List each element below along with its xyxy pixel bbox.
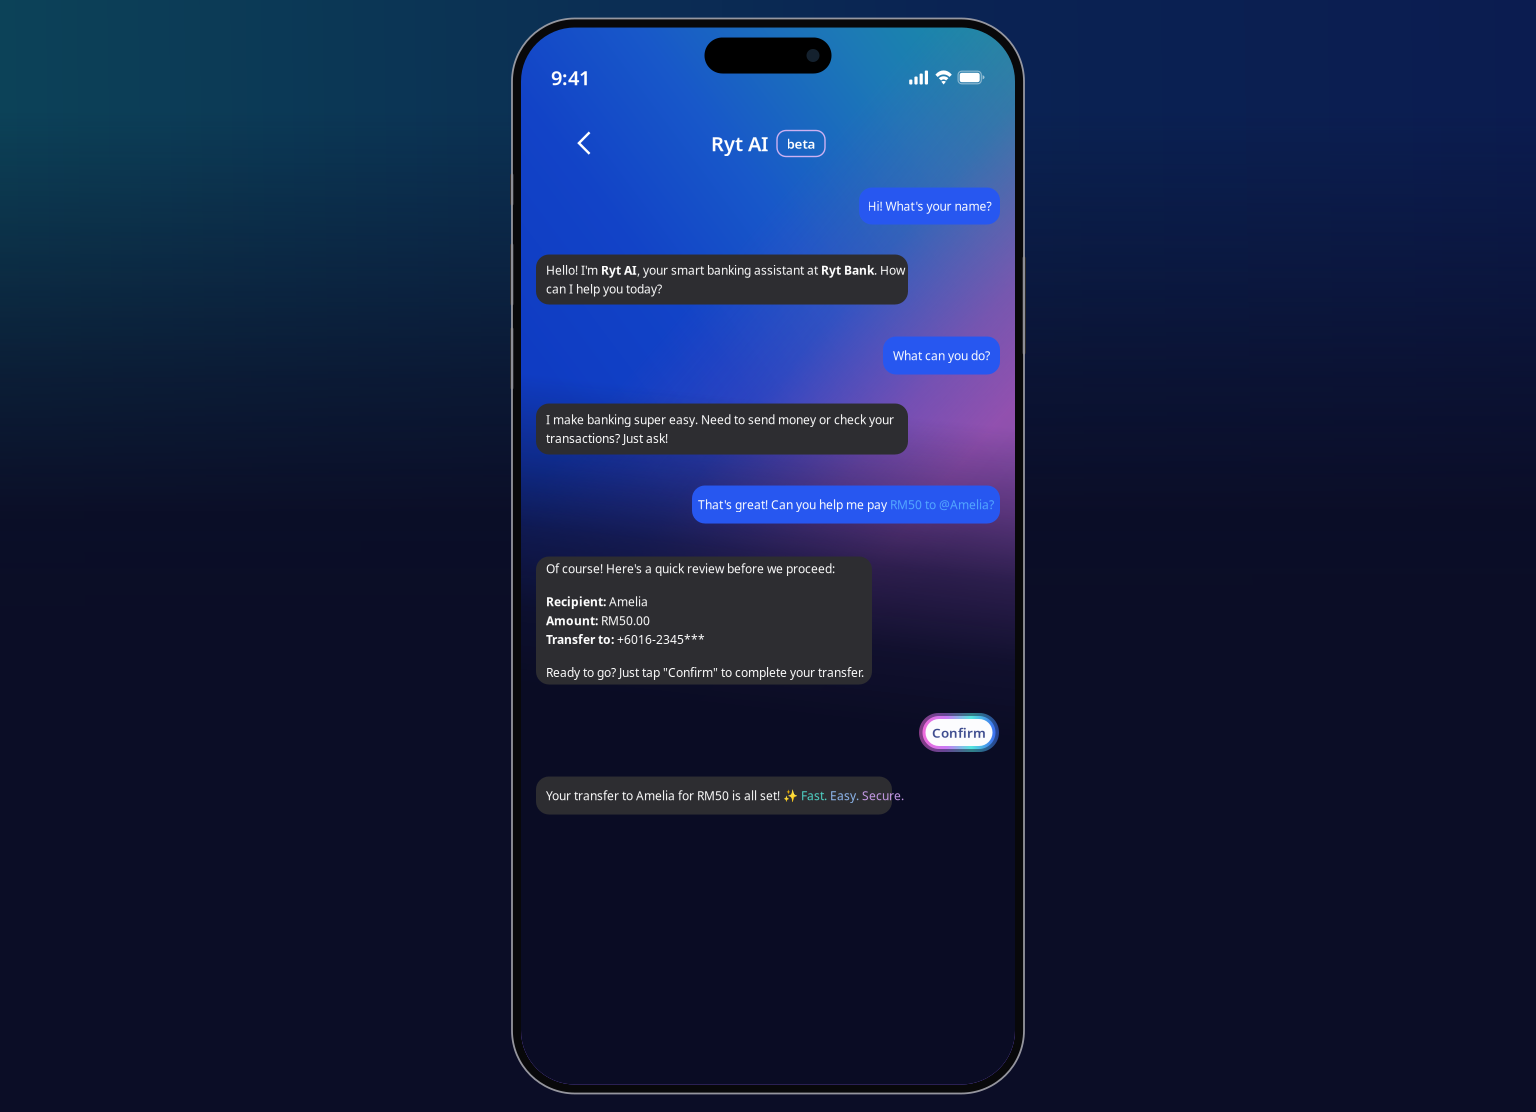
staticText: Of course! Here's a quick review before … bbox=[546, 561, 835, 577]
button[interactable]: Confirm bbox=[917, 712, 1001, 752]
staticText: , your smart banking assistant at bbox=[637, 262, 821, 278]
button[interactable]: beta bbox=[777, 130, 825, 156]
staticText: RM50 to @Amelia? bbox=[890, 496, 994, 512]
staticText: Hello! I'm bbox=[546, 262, 601, 278]
staticText: Ryt Bank bbox=[821, 262, 874, 278]
staticText: . How bbox=[874, 262, 905, 278]
staticText: Transfer to: bbox=[546, 631, 617, 647]
staticText: transactions? Just ask! bbox=[546, 430, 668, 446]
staticText: I make banking super easy. Need to send … bbox=[546, 412, 894, 427]
staticText: Easy. bbox=[830, 787, 862, 803]
staticText: Ryt AI bbox=[711, 130, 768, 157]
staticText: Secure. bbox=[862, 787, 904, 803]
staticText: Confirm bbox=[932, 724, 986, 741]
staticText: That's great! Can you help me pay bbox=[698, 496, 890, 512]
staticText: can I help you today? bbox=[546, 281, 662, 297]
staticText: Amelia bbox=[609, 594, 648, 609]
staticText: +6016-2345*** bbox=[617, 631, 705, 647]
staticText: Fast. bbox=[801, 787, 830, 803]
staticText: Hi! What's your name? bbox=[867, 198, 991, 214]
staticText: Ryt AI bbox=[601, 262, 637, 278]
staticText: 9:41 bbox=[551, 64, 590, 91]
staticText: beta bbox=[786, 135, 815, 152]
staticText: Your transfer to Amelia for RM50 is all … bbox=[546, 787, 783, 803]
staticText: What can you do? bbox=[893, 347, 990, 363]
button[interactable]: Back bbox=[577, 123, 617, 163]
staticText: RM50.00 bbox=[601, 612, 650, 628]
staticText: Recipient: bbox=[546, 594, 609, 609]
staticText: Amount: bbox=[546, 612, 601, 628]
staticText: Ready to go? Just tap "Confirm" to compl… bbox=[546, 664, 864, 680]
staticText: ✨ bbox=[783, 787, 801, 803]
